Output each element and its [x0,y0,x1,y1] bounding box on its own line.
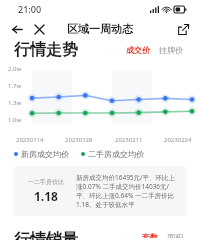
staticText: 面积 [167,232,183,238]
staticText: 新房成交均价 [21,149,69,159]
button[interactable]: 成交价 [123,43,153,57]
staticText: 1.3w [8,99,22,107]
staticText: 套数 [142,232,158,238]
staticText: 成交价 [126,45,150,55]
button[interactable]: Back [6,18,28,40]
staticText: 一二手房价比 [28,178,64,186]
staticText: 1.18 [34,188,58,204]
staticText: 1.7w [8,82,22,90]
staticText: 区域一周动态 [67,22,133,36]
staticText: 挂牌价 [159,45,183,55]
staticText: 20230128 [65,136,93,144]
staticText: 21:00 [18,3,42,15]
staticText: 2.0w [8,65,22,73]
staticText: 新房成交均价16495元/平、环比上涨0.07% 二手成交均价14036元/平、… [76,173,178,209]
button[interactable]: Share [172,18,194,40]
staticText: 20230114 [16,136,44,144]
staticText: 20230211 [115,136,143,144]
staticText: 行情走势 [14,40,78,60]
button[interactable]: Close [28,18,50,40]
button[interactable]: 面积 [164,230,186,240]
button[interactable]: 套数 [139,230,161,240]
staticText: 1.0w [8,116,22,124]
staticText: 二手房成交均价 [88,149,144,159]
staticText: 行情销量 [14,230,78,240]
button[interactable]: 挂牌价 [156,43,186,57]
staticText: 20230224 [164,136,192,144]
